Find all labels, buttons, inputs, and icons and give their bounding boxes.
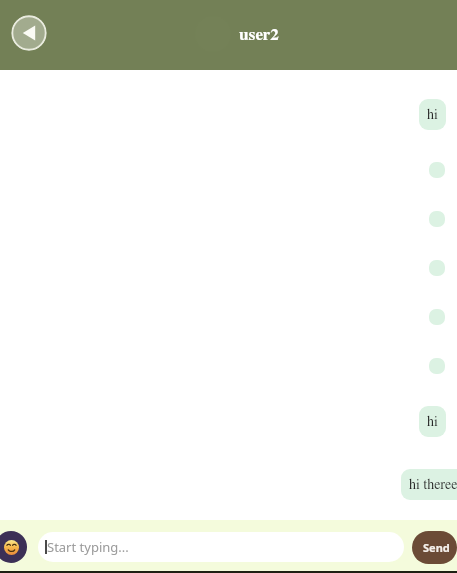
button[interactable]: Back [11,15,47,51]
staticText: Start typing... [47,538,129,556]
button[interactable] [429,211,445,227]
button[interactable]: Insert emoji [0,531,27,563]
button[interactable] [429,260,445,276]
button[interactable] [429,162,445,178]
staticText: Send [423,540,450,555]
staticText: hi [427,108,438,122]
button[interactable]: Send [412,531,457,564]
button[interactable]: hi theree [401,469,457,500]
button[interactable] [429,358,445,374]
button[interactable]: hi [419,406,446,437]
button[interactable]: hi [419,99,446,130]
staticText: user2 [239,26,279,43]
button[interactable] [429,309,445,325]
button[interactable]: Start typing... [38,532,404,562]
staticText: hi theree [409,478,457,492]
staticText: hi [427,415,438,429]
button[interactable]: user2 [239,0,279,69]
